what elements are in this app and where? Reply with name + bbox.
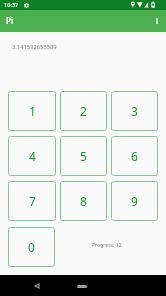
button[interactable]: 2 xyxy=(60,91,107,131)
staticText: 2 xyxy=(80,103,87,119)
staticText: 10:37 xyxy=(4,1,19,9)
button[interactable]: Back xyxy=(31,280,42,291)
button[interactable]: 6 xyxy=(111,136,158,176)
button[interactable]: 7 xyxy=(8,181,56,221)
staticText: 6 xyxy=(131,148,138,164)
staticText: Progress: 12 xyxy=(92,242,122,249)
staticText: 5 xyxy=(80,148,87,164)
staticText: 0 xyxy=(28,239,35,255)
staticText: 8 xyxy=(80,193,87,209)
button[interactable]: 1 xyxy=(8,91,56,131)
button[interactable]: 8 xyxy=(60,181,107,221)
staticText: 7 xyxy=(29,193,36,209)
button[interactable]: 0 xyxy=(8,227,55,267)
staticText: 3 xyxy=(131,103,138,119)
button[interactable]: 3 xyxy=(111,91,158,131)
button[interactable]: 5 xyxy=(60,136,107,176)
button[interactable]: More options xyxy=(151,10,163,32)
button[interactable]: 4 xyxy=(8,136,56,176)
staticText: 1 xyxy=(29,103,36,119)
staticText: 3.141592653589 xyxy=(12,43,57,51)
staticText: 4 xyxy=(29,148,36,164)
button[interactable]: Home xyxy=(70,280,94,292)
staticText: 9 xyxy=(131,193,138,209)
staticText: Pi xyxy=(6,15,14,26)
button[interactable]: 9 xyxy=(111,181,158,221)
